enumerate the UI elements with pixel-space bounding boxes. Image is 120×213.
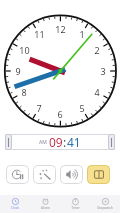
staticText: 4 — [94, 86, 100, 98]
button[interactable]: Stopwatch — [90, 195, 120, 213]
staticText: 11 — [34, 28, 45, 40]
staticText: 1 — [79, 28, 85, 40]
button[interactable]: Timer — [60, 195, 90, 213]
staticText: 41 — [67, 134, 81, 150]
staticText: 2 — [94, 44, 100, 56]
button[interactable]: Clock — [0, 195, 30, 213]
staticText: 12 — [55, 23, 66, 35]
staticText: Stopwatch — [97, 206, 113, 210]
staticText: 10 — [19, 44, 30, 56]
button[interactable]: Split screen — [87, 165, 110, 184]
staticText: Clock — [11, 206, 19, 210]
staticText: 5 — [79, 102, 85, 114]
button[interactable]: Sleep timer — [6, 165, 29, 184]
staticText: AM — [39, 139, 47, 146]
button[interactable]: Alarm — [30, 195, 60, 213]
staticText: 09 — [49, 134, 63, 150]
button[interactable]: Volume — [60, 165, 83, 184]
staticText: Alarm — [41, 206, 50, 210]
staticText: 8 — [21, 86, 27, 98]
staticText: 3 — [100, 65, 106, 77]
staticText: : — [63, 134, 67, 150]
button[interactable]: Effects — [33, 165, 56, 184]
staticText: 6 — [57, 108, 63, 120]
staticText: Timer — [71, 206, 80, 210]
staticText: 7 — [36, 102, 42, 114]
staticText: 9 — [15, 65, 21, 77]
